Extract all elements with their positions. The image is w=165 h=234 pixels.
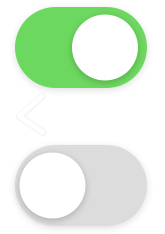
button[interactable]: Switch, on <box>15 7 147 88</box>
button[interactable]: Switch, off <box>15 145 147 226</box>
